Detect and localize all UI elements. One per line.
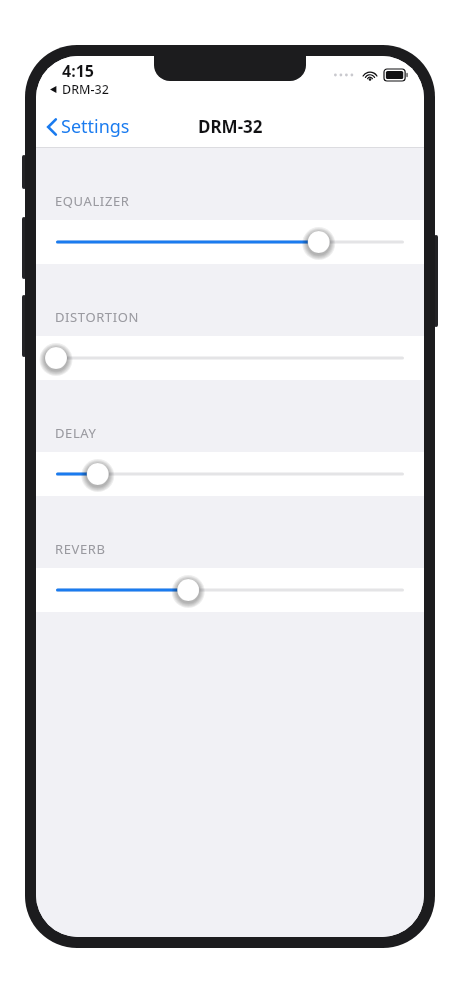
staticText: REVERB <box>55 540 106 558</box>
staticText: Settings <box>61 114 130 139</box>
button[interactable]: DISTORTION slider <box>36 336 424 380</box>
button[interactable]: REVERB slider <box>36 568 424 612</box>
button[interactable]: DELAY slider <box>36 452 424 496</box>
staticText: EQUALIZER <box>55 192 130 210</box>
staticText: DRM-32 <box>198 115 263 138</box>
button[interactable]: Settings <box>36 108 140 145</box>
staticText: DISTORTION <box>55 308 139 326</box>
staticText: DELAY <box>55 424 97 442</box>
staticText: DRM-32 <box>62 81 109 98</box>
button[interactable]: EQUALIZER slider <box>36 220 424 264</box>
staticText: 4:15 <box>62 60 94 82</box>
